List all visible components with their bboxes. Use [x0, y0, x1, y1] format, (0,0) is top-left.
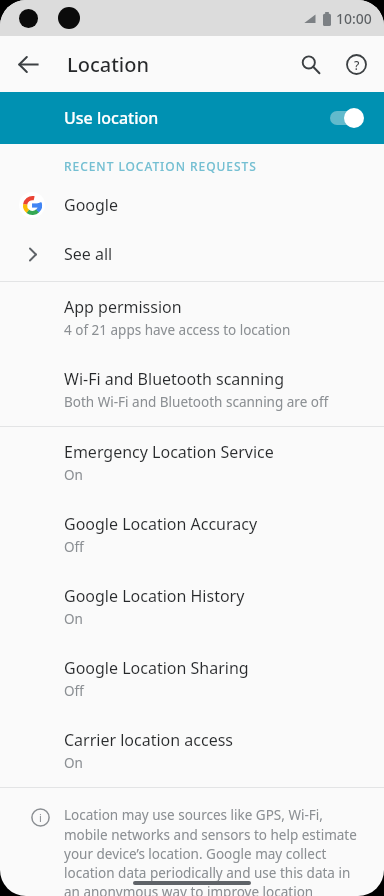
- button[interactable]: Google Location Sharing: [0, 643, 384, 715]
- button[interactable]: Google Location History: [0, 571, 384, 643]
- button[interactable]: Google: [0, 181, 384, 229]
- staticText: App permission: [64, 296, 182, 318]
- button[interactable]: Use location: [0, 92, 384, 144]
- staticText: Google: [64, 194, 119, 216]
- staticText: 10:00: [336, 9, 372, 28]
- staticText: Both Wi-Fi and Bluetooth scanning are of…: [64, 393, 329, 411]
- button[interactable]: Google Location Accuracy: [0, 499, 384, 571]
- staticText: Google Location History: [64, 585, 245, 607]
- staticText: Carrier location access: [64, 729, 234, 751]
- staticText: Off: [64, 682, 84, 700]
- button[interactable]: Carrier location access: [0, 715, 384, 787]
- button[interactable]: Emergency Location Service: [0, 427, 384, 499]
- staticText: 4 of 21 apps have access to location: [64, 321, 291, 339]
- staticText: Emergency Location Service: [64, 441, 274, 463]
- button[interactable]: Search: [287, 41, 333, 87]
- button[interactable]: Help: [333, 41, 379, 87]
- staticText: Google Location Sharing: [64, 657, 249, 679]
- staticText: i: [39, 810, 42, 825]
- staticText: Location may use sources like GPS, Wi-Fi…: [64, 806, 358, 896]
- staticText: Use location: [64, 107, 328, 129]
- staticText: Google Location Accuracy: [64, 513, 258, 535]
- staticText: Wi-Fi and Bluetooth scanning: [64, 368, 284, 390]
- button[interactable]: See all: [0, 229, 384, 279]
- staticText: ?: [354, 57, 360, 73]
- button[interactable]: App permission: [0, 282, 384, 354]
- staticText: On: [64, 466, 83, 484]
- staticText: RECENT LOCATION REQUESTS: [64, 158, 257, 174]
- button[interactable]: Back: [6, 42, 50, 86]
- staticText: On: [64, 610, 83, 628]
- button[interactable]: Wi-Fi and Bluetooth scanning: [0, 354, 384, 426]
- staticText: On: [64, 754, 83, 772]
- staticText: Location: [67, 51, 149, 78]
- staticText: Off: [64, 538, 84, 556]
- staticText: See all: [64, 243, 113, 265]
